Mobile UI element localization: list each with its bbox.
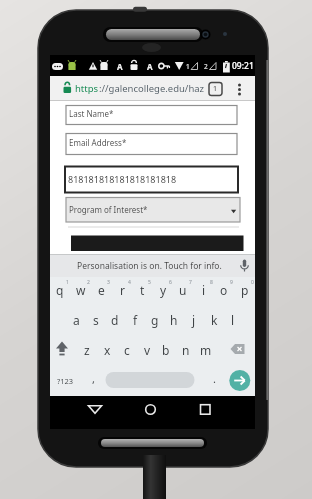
button[interactable]: i — [195, 282, 213, 298]
staticText: d — [111, 312, 119, 328]
button[interactable]: w — [72, 282, 90, 298]
button[interactable]: q — [51, 282, 69, 298]
staticText: n — [182, 342, 190, 358]
button[interactable]: u — [174, 282, 192, 298]
staticText: ://galencollege.edu/haz — [99, 82, 205, 95]
button[interactable]: Last Name* — [69, 104, 149, 123]
staticText: 2 — [204, 62, 208, 71]
button[interactable] — [50, 254, 255, 277]
staticText: . — [213, 371, 216, 386]
staticText: 3 — [107, 279, 110, 286]
button[interactable] — [106, 372, 195, 388]
button[interactable] — [190, 399, 220, 427]
button[interactable]: t — [133, 282, 151, 298]
button[interactable]: a — [67, 311, 85, 328]
staticText: 0 — [251, 279, 254, 286]
button[interactable]: j — [185, 311, 203, 328]
staticText: f — [133, 312, 138, 328]
staticText: Last Name* — [69, 108, 114, 119]
button[interactable]: n — [177, 341, 195, 358]
button[interactable]: , — [88, 370, 98, 387]
staticText: y — [160, 282, 167, 298]
staticText: v — [144, 342, 151, 358]
button[interactable]: Program of Interest* — [69, 197, 199, 222]
staticText: z — [84, 342, 90, 358]
button[interactable]: ?123 — [55, 372, 75, 389]
staticText: 1 — [66, 279, 69, 286]
staticText: Personalisation is on. Touch for info. — [77, 260, 222, 272]
staticText: o — [220, 282, 228, 298]
staticText: u — [179, 282, 187, 298]
staticText: i — [202, 282, 206, 298]
button[interactable]: m — [197, 341, 215, 358]
staticText: 7 — [189, 279, 192, 286]
button[interactable]: 1 — [209, 82, 222, 95]
staticText: w — [76, 282, 86, 298]
button[interactable]: c — [118, 341, 136, 358]
staticText: g — [151, 312, 159, 328]
staticText: 1 — [213, 84, 218, 94]
button[interactable]: . — [209, 370, 219, 387]
staticText: l — [231, 312, 235, 328]
button[interactable]: d — [106, 311, 124, 328]
button[interactable]: r — [113, 282, 131, 298]
button[interactable]: x — [98, 341, 116, 358]
staticText: Program of Interest* — [69, 204, 148, 215]
staticText: 5 — [148, 279, 151, 286]
button[interactable]: h — [165, 311, 183, 328]
button[interactable]: o — [215, 282, 233, 298]
staticText: Email Address* — [69, 137, 127, 148]
button[interactable]: v — [138, 341, 156, 358]
staticText: 2 — [87, 279, 90, 286]
button[interactable] — [80, 399, 110, 427]
button[interactable]: z — [78, 341, 96, 358]
staticText: b — [162, 342, 170, 358]
button[interactable]: l — [224, 311, 242, 328]
button[interactable]: b — [157, 341, 175, 358]
staticText: 09:21 — [232, 60, 254, 72]
staticText: 1 — [186, 62, 190, 71]
button[interactable]: e — [92, 282, 110, 298]
button[interactable] — [50, 76, 255, 101]
staticText: 4 — [128, 279, 131, 286]
button[interactable]: 818181818181818181818 — [68, 166, 198, 192]
button[interactable] — [229, 370, 250, 391]
staticText: 8 — [210, 279, 213, 286]
staticText: a — [73, 312, 80, 328]
staticText: A — [147, 61, 153, 72]
staticText: h — [170, 312, 178, 328]
staticText: , — [92, 371, 95, 386]
staticText: ?123 — [57, 376, 74, 386]
staticText: r — [120, 282, 125, 298]
staticText: k — [211, 312, 218, 328]
button[interactable]: k — [205, 311, 223, 328]
staticText: p — [241, 282, 249, 298]
button[interactable]: g — [146, 311, 164, 328]
button[interactable]: p — [236, 282, 254, 298]
button[interactable]: f — [126, 311, 144, 328]
staticText: s — [93, 312, 99, 328]
staticText: 6 — [169, 279, 172, 286]
button[interactable]: y — [154, 282, 172, 298]
staticText: t — [140, 282, 145, 298]
staticText: https — [75, 82, 99, 95]
staticText: j — [192, 312, 196, 328]
staticText: 9 — [230, 279, 233, 286]
staticText: m — [200, 342, 212, 358]
staticText: e — [98, 282, 105, 298]
button[interactable]: Email Address* — [69, 132, 169, 153]
button[interactable]: s — [87, 311, 105, 328]
staticText: q — [56, 282, 64, 298]
button[interactable] — [136, 399, 166, 427]
staticText: 818181818181818181818 — [68, 173, 177, 185]
staticText: x — [104, 342, 111, 358]
staticText: c — [124, 342, 130, 358]
staticText: A — [117, 61, 123, 72]
